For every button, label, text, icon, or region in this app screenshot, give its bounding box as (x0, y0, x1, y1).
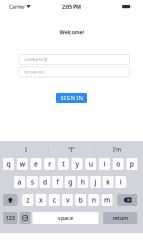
staticText: f (56, 178, 58, 186)
staticText: d (43, 178, 47, 186)
staticText: o (116, 160, 120, 168)
button[interactable]: w (17, 158, 28, 170)
staticText: g (68, 178, 72, 186)
button[interactable]: 123 (3, 212, 17, 224)
staticText: c (53, 196, 56, 204)
button[interactable]: n (88, 194, 99, 206)
staticText: space (58, 214, 73, 222)
button[interactable]: g (65, 176, 76, 188)
button[interactable]: r (44, 158, 55, 170)
staticText: USERNAME (24, 57, 45, 62)
staticText: 2:05 PM (62, 3, 81, 10)
button[interactable]: d (39, 176, 50, 188)
staticText: y (75, 160, 78, 168)
staticText: p (130, 160, 134, 168)
button[interactable]: I’m (94, 144, 139, 155)
button[interactable]: h (77, 176, 88, 188)
button[interactable]: Next keyboard (20, 212, 31, 224)
staticText: u (89, 160, 93, 168)
staticText: w (20, 160, 25, 168)
staticText: 123 (6, 214, 15, 222)
staticText: h (81, 178, 85, 186)
staticText: e (34, 160, 38, 168)
button[interactable]: y (72, 158, 82, 170)
button[interactable]: j (90, 176, 101, 188)
staticText: SIGN IN (60, 94, 83, 102)
button[interactable]: l (115, 176, 126, 188)
button[interactable]: z (22, 194, 33, 206)
button[interactable]: k (103, 176, 114, 188)
button[interactable]: p (126, 158, 137, 170)
staticText: x (39, 196, 43, 204)
button[interactable]: s (27, 176, 38, 188)
staticText: v (66, 196, 69, 204)
staticText: r (48, 160, 51, 168)
staticText: I (25, 146, 27, 153)
button[interactable]: Shift (3, 194, 17, 206)
button[interactable]: Delete (117, 194, 137, 206)
staticText: I’m (113, 146, 121, 153)
button[interactable]: b (75, 194, 86, 206)
button[interactable]: I (3, 144, 48, 155)
button[interactable]: x (35, 194, 46, 206)
button[interactable]: f (52, 176, 63, 188)
staticText: q (6, 160, 10, 168)
button[interactable]: SIGN IN (56, 93, 87, 103)
button[interactable]: e (30, 158, 41, 170)
button[interactable]: PASSWORD (19, 67, 129, 77)
button[interactable]: space (32, 212, 99, 224)
staticText: j (94, 178, 96, 186)
button[interactable]: i (99, 158, 110, 170)
staticText: a (18, 178, 22, 186)
staticText: z (26, 196, 29, 204)
button[interactable]: u (85, 158, 96, 170)
button[interactable]: q (3, 158, 14, 170)
button[interactable]: c (49, 194, 60, 206)
staticText: k (106, 178, 110, 186)
button[interactable]: USERNAME (19, 54, 129, 64)
staticText: Welcome! (59, 29, 83, 36)
staticText: Carrier (9, 3, 25, 10)
button[interactable]: t (58, 158, 69, 170)
staticText: PASSWORD (24, 69, 45, 75)
button[interactable]: m (101, 194, 112, 206)
button[interactable]: “I” (49, 144, 94, 155)
staticText: l (120, 178, 122, 186)
staticText: i (103, 160, 105, 168)
staticText: m (104, 196, 110, 204)
staticText: t (62, 160, 64, 168)
staticText: return (113, 214, 128, 222)
staticText: s (31, 178, 34, 186)
button[interactable]: return (103, 212, 137, 224)
staticText: “I” (68, 146, 74, 153)
staticText: b (79, 196, 83, 204)
staticText: n (92, 196, 96, 204)
button[interactable]: o (113, 158, 124, 170)
button[interactable]: v (62, 194, 73, 206)
button[interactable]: a (14, 176, 25, 188)
